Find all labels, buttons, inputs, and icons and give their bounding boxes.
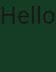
staticText: Hello	[0, 0, 56, 30]
